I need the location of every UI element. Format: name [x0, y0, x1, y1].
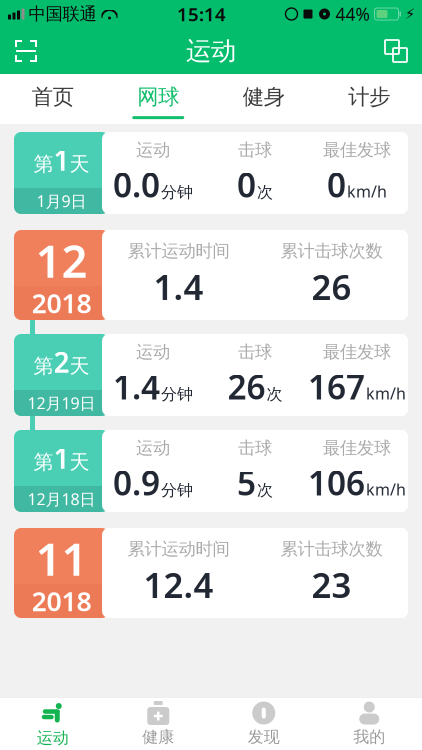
staticText: 2: [53, 343, 69, 381]
staticText: 中国联通: [28, 3, 96, 25]
staticText: 2018: [31, 285, 91, 321]
staticText: 最佳发球: [323, 341, 391, 362]
staticText: 运动: [186, 35, 236, 66]
staticText: 击球: [238, 139, 272, 160]
staticText: km/h: [347, 181, 387, 202]
button[interactable]: 扫一扫: [0, 28, 52, 74]
staticText: 健身: [243, 84, 285, 110]
staticText: 5: [237, 460, 256, 505]
staticText: 发现: [248, 727, 280, 747]
button[interactable]: 计步: [316, 72, 422, 126]
staticText: 天: [69, 354, 89, 378]
staticText: 次: [257, 480, 273, 500]
staticText: 12.4: [143, 562, 213, 608]
staticText: 计步: [348, 84, 390, 110]
button[interactable]: 健身: [211, 72, 316, 126]
button[interactable]: 健康: [105, 698, 211, 750]
staticText: 0: [237, 162, 256, 207]
staticText: 1: [53, 439, 69, 477]
staticText: 击球: [238, 437, 272, 458]
button[interactable]: 11: [14, 528, 408, 618]
staticText: 第: [33, 152, 53, 176]
staticText: 第: [33, 354, 53, 378]
staticText: 12: [35, 230, 87, 286]
button[interactable]: 网球: [105, 72, 211, 126]
staticText: 1.4: [153, 264, 203, 310]
button[interactable]: 12: [14, 230, 408, 320]
staticText: 最佳发球: [323, 139, 391, 160]
button[interactable]: 第: [14, 430, 408, 512]
staticText: 1.4: [113, 364, 160, 409]
staticText: 天: [69, 152, 89, 176]
staticText: 运动: [136, 437, 170, 458]
staticText: 次: [257, 182, 273, 202]
staticText: 我的: [353, 727, 385, 747]
staticText: 分钟: [161, 480, 193, 500]
staticText: 累计击球次数: [280, 240, 382, 262]
staticText: 1: [53, 141, 69, 179]
staticText: 次: [266, 384, 282, 404]
button[interactable]: 设备: [370, 28, 422, 74]
staticText: 累计运动时间: [127, 538, 229, 560]
staticText: 第: [33, 450, 53, 474]
staticText: km/h: [366, 383, 406, 404]
staticText: 分钟: [161, 384, 193, 404]
staticText: 网球: [137, 84, 179, 110]
staticText: 0.9: [113, 460, 160, 505]
button[interactable]: 运动: [0, 698, 105, 750]
staticText: 12月18日: [27, 488, 95, 510]
staticText: 0.0: [113, 162, 160, 207]
staticText: 12月19日: [27, 392, 95, 414]
staticText: 击球: [238, 341, 272, 362]
staticText: 167: [308, 364, 365, 409]
staticText: 26: [311, 264, 351, 310]
staticText: 天: [69, 450, 89, 474]
staticText: 首页: [32, 84, 74, 110]
staticText: 0: [327, 162, 346, 207]
staticText: 44%: [335, 2, 369, 25]
staticText: 23: [311, 562, 351, 608]
staticText: 1月9日: [36, 190, 86, 212]
staticText: 26: [227, 364, 265, 409]
staticText: 2018: [31, 583, 91, 619]
staticText: 11: [35, 528, 87, 584]
staticText: ⚡︎: [405, 6, 415, 22]
staticText: 健康: [142, 727, 174, 747]
staticText: 分钟: [161, 182, 193, 202]
staticText: 运动: [136, 341, 170, 362]
button[interactable]: 第: [14, 132, 408, 214]
staticText: 运动: [37, 728, 69, 748]
staticText: km/h: [366, 479, 406, 500]
button[interactable]: 我的: [316, 698, 422, 750]
staticText: 15:14: [177, 2, 226, 26]
button[interactable]: 第: [14, 334, 408, 416]
button[interactable]: 首页: [0, 72, 105, 126]
staticText: 累计运动时间: [127, 240, 229, 262]
staticText: 累计击球次数: [280, 538, 382, 560]
staticText: 最佳发球: [323, 437, 391, 458]
button[interactable]: 发现: [211, 698, 316, 750]
staticText: 运动: [136, 139, 170, 160]
staticText: 106: [308, 460, 365, 505]
